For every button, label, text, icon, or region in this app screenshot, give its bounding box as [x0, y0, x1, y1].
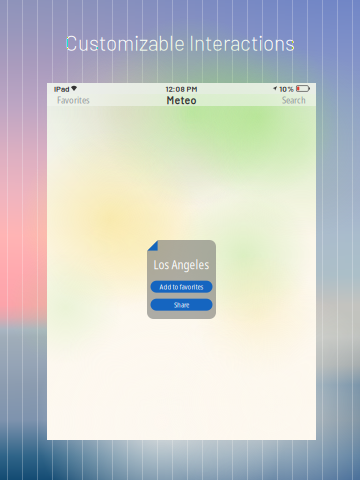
button[interactable]: Search	[278, 92, 310, 108]
staticText: Meteo	[166, 94, 196, 106]
staticText: Search	[282, 94, 306, 106]
staticText: Favorites	[57, 94, 90, 106]
staticText: 10%	[279, 84, 294, 93]
staticText: Add to favorites	[159, 282, 203, 292]
staticText: Share	[174, 300, 189, 310]
button[interactable]: Add to favorites	[150, 281, 212, 293]
staticText: Customizable Interactions	[65, 30, 295, 55]
button[interactable]: Share	[150, 299, 212, 311]
staticText: 12:08 PM	[165, 84, 197, 93]
staticText: iPad	[54, 84, 69, 93]
staticText: Los Angeles	[153, 256, 209, 273]
button[interactable]: Favorites	[53, 92, 94, 108]
